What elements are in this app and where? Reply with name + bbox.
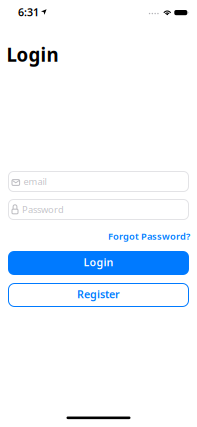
staticText: Register [77, 287, 120, 301]
staticText: email [24, 175, 47, 188]
staticText: Login [6, 42, 58, 67]
button[interactable]: Password [8, 199, 189, 220]
button[interactable]: Forgot Password? [108, 230, 190, 242]
button[interactable]: email [8, 171, 189, 192]
button[interactable]: Register [8, 283, 189, 307]
button[interactable]: Login [8, 251, 189, 275]
staticText: Forgot Password? [108, 230, 190, 242]
staticText: Password [22, 203, 64, 216]
staticText: 6:31 [18, 5, 39, 19]
staticText: Login [83, 255, 113, 269]
